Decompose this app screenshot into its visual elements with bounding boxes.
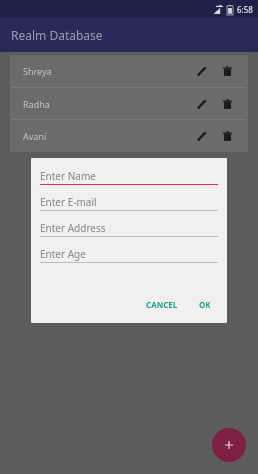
staticText: 6:58 <box>237 4 253 15</box>
button[interactable]: Enter Address <box>40 219 218 236</box>
button[interactable]: Enter Age <box>40 245 218 262</box>
button[interactable]: Edit Radha <box>192 94 212 114</box>
staticText: Enter Address <box>40 221 106 235</box>
button[interactable]: Enter E-mail <box>40 193 218 210</box>
button[interactable]: Delete Avani <box>217 126 237 146</box>
staticText: Enter Name <box>40 169 96 183</box>
button[interactable]: CANCEL <box>142 296 182 313</box>
staticText: OK <box>199 299 211 310</box>
button[interactable]: Shreya <box>10 55 248 87</box>
button[interactable]: Enter Name <box>40 167 218 184</box>
staticText: Avani <box>23 130 192 142</box>
staticText: Realm Database <box>11 27 103 43</box>
button[interactable]: OK <box>195 296 215 313</box>
button[interactable]: Delete Shreya <box>217 61 237 81</box>
button[interactable]: Add entry <box>212 428 246 462</box>
staticText: Shreya <box>23 65 192 77</box>
button[interactable]: Edit Avani <box>192 126 212 146</box>
staticText: Radha <box>23 98 192 110</box>
button[interactable]: Radha <box>10 88 248 119</box>
button[interactable]: Delete Radha <box>217 94 237 114</box>
button[interactable]: Edit Shreya <box>192 61 212 81</box>
staticText: Enter Age <box>40 247 86 261</box>
staticText: Enter E-mail <box>40 195 97 209</box>
button[interactable]: Avani <box>10 120 248 151</box>
staticText: CANCEL <box>146 299 178 310</box>
